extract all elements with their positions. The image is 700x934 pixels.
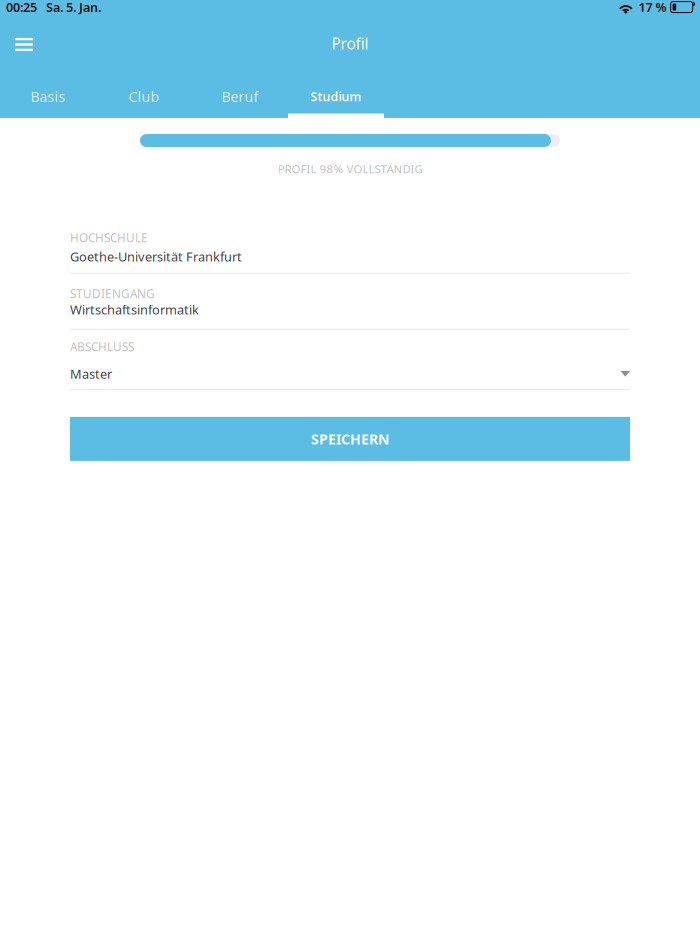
- button[interactable]: Menu: [0, 21, 48, 65]
- button[interactable]: Club: [96, 71, 192, 115]
- staticText: PROFIL 98% VOLLSTÄNDIG: [277, 161, 422, 177]
- staticText: 17 %: [639, 0, 667, 16]
- staticText: Sa. 5. Jan.: [46, 0, 101, 16]
- staticText: Wirtschaftsinformatik: [70, 301, 199, 318]
- button[interactable]: Beruf: [192, 71, 288, 115]
- staticText: 00:25: [6, 0, 37, 16]
- staticText: Profil: [331, 33, 368, 54]
- staticText: Goethe-Universität Frankfurt: [70, 248, 242, 265]
- staticText: HOCHSCHULE: [70, 230, 148, 246]
- button[interactable]: Studium: [288, 71, 384, 115]
- staticText: STUDIENGANG: [70, 286, 155, 302]
- button[interactable]: SPEICHERN: [70, 417, 630, 461]
- staticText: Master: [70, 365, 112, 382]
- staticText: Club: [128, 87, 159, 106]
- button[interactable]: Basis: [0, 71, 96, 115]
- staticText: Studium: [310, 88, 361, 105]
- staticText: SPEICHERN: [311, 429, 389, 448]
- staticText: Basis: [30, 87, 65, 106]
- staticText: Beruf: [221, 87, 258, 106]
- staticText: ABSCHLUSS: [70, 339, 134, 355]
